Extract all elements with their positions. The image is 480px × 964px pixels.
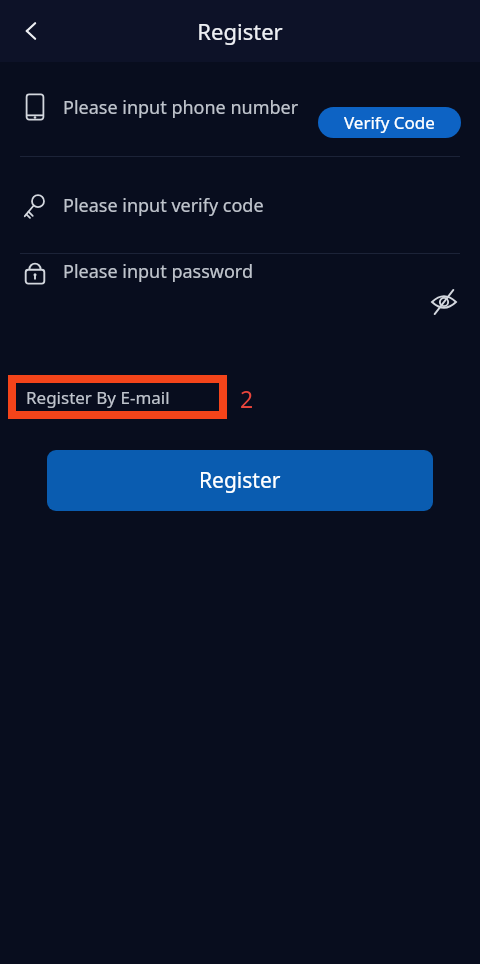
staticText: Please input password — [63, 259, 253, 284]
staticText: Register — [197, 16, 283, 46]
staticText: 2 — [240, 383, 254, 414]
button[interactable]: Please input password — [0, 254, 480, 349]
staticText: Register — [199, 466, 281, 495]
staticText: Please input verify code — [63, 193, 264, 218]
button[interactable]: Please input verify code — [0, 158, 480, 253]
button[interactable]: Back — [6, 5, 58, 57]
button[interactable]: Verify Code — [318, 107, 461, 138]
button[interactable]: Register — [47, 450, 433, 511]
button[interactable]: Register By E-mail — [26, 386, 170, 409]
staticText: Please input phone number — [63, 95, 299, 120]
staticText: Verify Code — [344, 111, 435, 134]
button[interactable]: Show password — [422, 280, 466, 324]
button[interactable]: Please input phone number — [0, 90, 480, 156]
